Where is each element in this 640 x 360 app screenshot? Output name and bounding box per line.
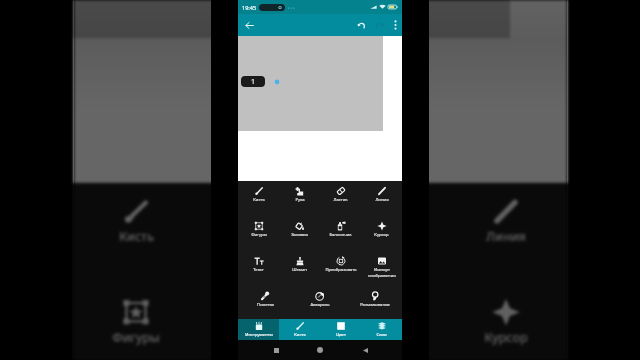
button[interactable]: Цвет [320,319,361,340]
staticText: Заливка [234,329,285,346]
button[interactable]: More options [388,16,402,34]
staticText: Акварель [310,302,330,308]
button[interactable]: Кисть [74,183,198,283]
staticText: Ластик [361,229,404,245]
staticText: Цвет [336,332,346,338]
staticText: Импорт изображения [368,267,396,278]
staticText: Линия [375,197,389,203]
button[interactable]: Фигуры [74,283,198,360]
button[interactable]: Заливка [198,283,321,360]
staticText: Фигуры [251,232,267,238]
button[interactable]: Преобразовать [320,251,361,286]
button[interactable]: Фигуры [238,216,279,251]
button[interactable]: Импорт изображения [361,251,402,286]
staticText: Инструменты [245,332,273,338]
staticText: Курсор [484,329,528,346]
staticText: Баллончик [349,329,416,346]
staticText: Слои [376,332,387,338]
button[interactable]: Рука [198,183,321,283]
button[interactable]: Штамп [279,251,320,286]
button[interactable]: Пипетка [238,286,292,319]
button[interactable]: Ластик [321,183,444,283]
staticText: Пипетка [257,302,274,308]
staticText: Кисть [294,332,306,338]
button[interactable]: Курсор [361,216,402,251]
button[interactable]: Баллончик [321,283,444,360]
button[interactable]: Recents [269,343,283,357]
button[interactable]: Undo [352,16,370,34]
staticText: Заливка [291,232,308,238]
button[interactable]: Размазывание [347,286,402,319]
staticText: Кисть [253,197,265,203]
staticText: Текст [253,267,264,273]
button[interactable]: Back [240,16,258,34]
staticText: Рука [246,229,274,245]
staticText: Фигуры [112,329,160,346]
button[interactable]: Ластик [320,181,361,216]
button[interactable]: Акварель [292,286,347,319]
staticText: Кисть [119,229,154,245]
button[interactable]: Back [358,343,372,357]
staticText: Баллончик [329,232,352,238]
button[interactable]: Линия [361,181,402,216]
staticText: Штамп [292,267,307,273]
staticText: Преобразовать [325,267,357,273]
button[interactable]: Текст [238,251,279,286]
staticText: Курсор [374,232,389,238]
button[interactable]: Линия [444,183,567,283]
button[interactable]: Кисть [238,181,279,216]
staticText: Ластик [333,197,348,203]
staticText: Размазывание [360,302,390,308]
button[interactable]: Баллончик [320,216,361,251]
button[interactable]: Заливка [279,216,320,251]
button[interactable]: Курсор [444,283,567,360]
staticText: Рука [295,197,305,203]
button[interactable]: Инструменты [238,319,279,340]
button[interactable]: Кисть [279,319,320,340]
button[interactable]: Home [313,343,327,357]
staticText: 1 [251,77,256,87]
staticText: 19:45 [242,4,257,11]
staticText: Линия [486,229,526,245]
button[interactable]: Рука [279,181,320,216]
button[interactable]: Слои [361,319,402,340]
button[interactable]: 1 [241,76,265,87]
